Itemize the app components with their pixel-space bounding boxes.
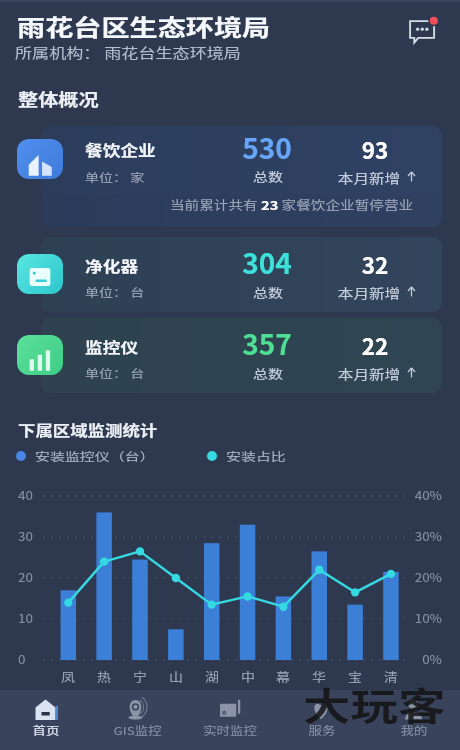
staticText: 雨花台区生态环境局 <box>17 10 271 43</box>
staticText: 华 <box>299 668 339 685</box>
staticText: 0 <box>18 650 26 667</box>
staticText: 357 <box>222 323 312 364</box>
button[interactable]: Home <box>0 690 92 750</box>
button[interactable] <box>41 237 442 312</box>
staticText: 中 <box>228 668 268 685</box>
other: Services <box>310 699 335 720</box>
button[interactable]: Messages <box>405 13 441 49</box>
staticText: 单位： 台 <box>85 365 145 382</box>
other: GIS monitoring <box>126 699 151 720</box>
staticText: 40% <box>364 486 442 503</box>
staticText: 餐饮企业 <box>85 139 156 160</box>
staticText: 0% <box>364 650 442 667</box>
staticText: 清 <box>371 668 411 685</box>
staticText: 本月新增 <box>327 283 411 302</box>
staticText: 我的 <box>401 722 427 738</box>
staticText: 总数 <box>238 167 298 185</box>
staticText: 30 <box>18 527 34 544</box>
staticText: 监控仪 <box>85 336 139 357</box>
button[interactable]: Profile <box>368 690 460 750</box>
button[interactable]: GIS monitoring <box>92 690 184 750</box>
staticText: 山 <box>156 668 196 685</box>
staticText: 整体概况 <box>18 87 98 111</box>
staticText: 单位： 家 <box>85 169 145 186</box>
staticText: 大玩客 <box>303 676 447 731</box>
staticText: 20% <box>364 568 442 585</box>
button[interactable]: Realtime monitoring <box>184 690 276 750</box>
staticText: 10 <box>18 609 34 626</box>
staticText: 40 <box>18 486 34 503</box>
staticText: 10% <box>364 609 442 626</box>
staticText: 宝 <box>335 668 375 685</box>
staticText: 下属区域监测统计 <box>18 419 157 440</box>
other: Profile <box>402 699 427 720</box>
staticText: 22 <box>345 329 405 362</box>
staticText: 20 <box>18 568 34 585</box>
staticText: 湖 <box>192 668 232 685</box>
staticText: 30% <box>364 527 442 544</box>
staticText: 总数 <box>238 364 298 382</box>
staticText: 当前累计共有 23 家餐饮企业暂停营业 <box>170 196 460 214</box>
staticText: 热 <box>84 668 124 685</box>
staticText: 幕 <box>263 668 303 685</box>
other: Home <box>34 699 59 720</box>
staticText: 净化器 <box>85 255 139 276</box>
staticText: 530 <box>222 127 312 168</box>
staticText: 本月新增 <box>327 364 411 383</box>
staticText: 单位： 台 <box>85 284 145 301</box>
button[interactable] <box>41 126 442 227</box>
staticText: 所属机构： 雨花台生态环境局 <box>15 42 242 62</box>
staticText: 本月新增 <box>327 168 411 187</box>
staticText: GIS监控 <box>114 722 162 738</box>
staticText: 首页 <box>33 722 59 738</box>
staticText: 宁 <box>120 668 160 685</box>
staticText: 93 <box>345 133 405 166</box>
staticText: 32 <box>345 248 405 281</box>
staticText: 安装占比 <box>226 448 286 465</box>
staticText: 服务 <box>309 722 335 738</box>
staticText: 凤 <box>48 668 88 685</box>
button[interactable]: Services <box>276 690 368 750</box>
staticText: 安装监控仪（台） <box>35 448 155 465</box>
staticText: 总数 <box>238 283 298 301</box>
staticText: 实时监控 <box>203 722 257 738</box>
staticText: 304 <box>222 242 312 283</box>
other: Realtime monitoring <box>218 699 243 720</box>
button[interactable] <box>41 318 442 393</box>
